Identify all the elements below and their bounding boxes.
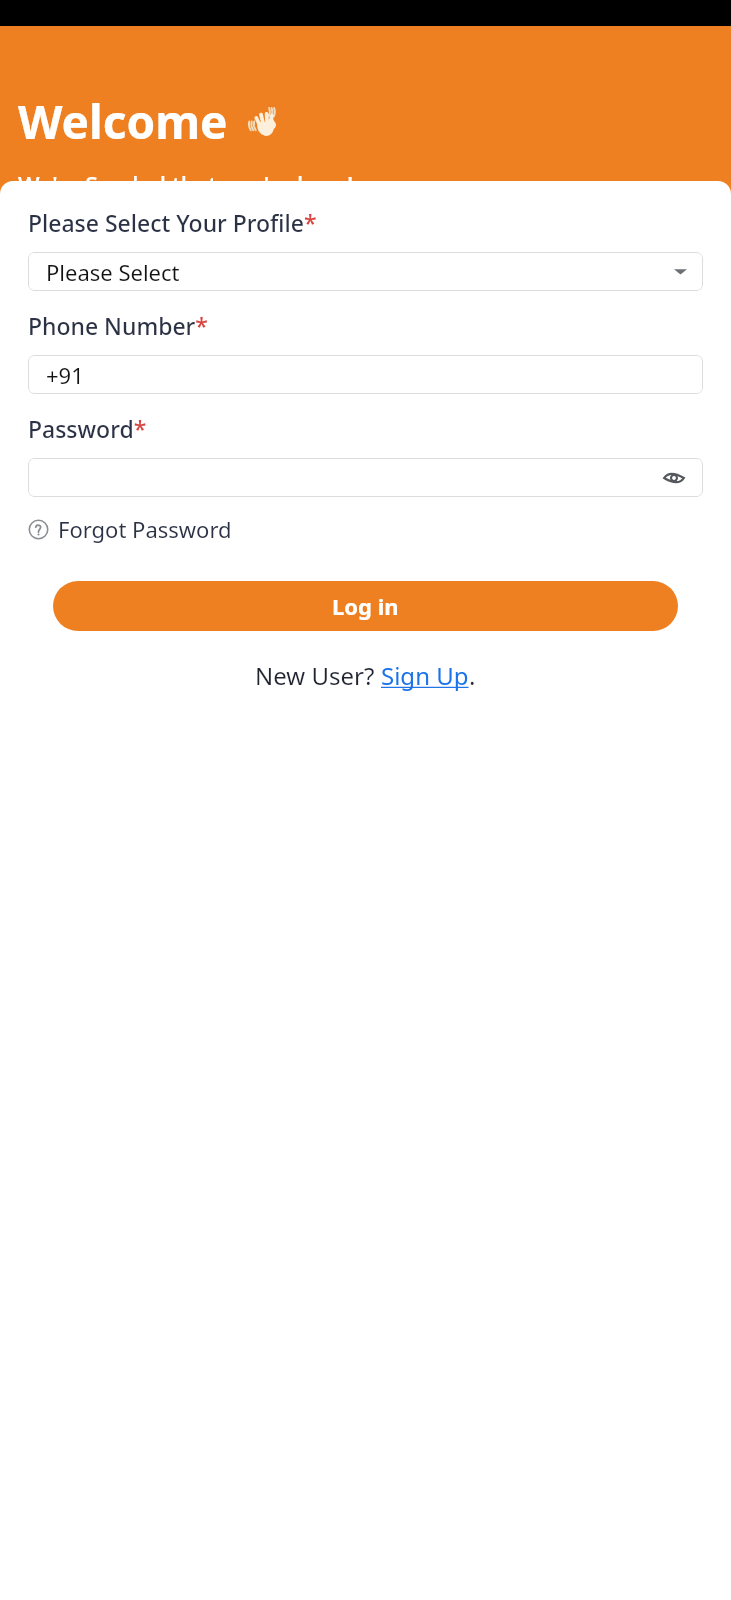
staticText: +91: [46, 360, 84, 390]
button[interactable]: Log in: [53, 581, 678, 631]
staticText: .: [469, 659, 476, 692]
staticText: Please Select: [46, 257, 180, 287]
staticText: Password*: [28, 413, 147, 444]
staticText: Log in: [332, 591, 399, 621]
staticText: Phone Number*: [28, 310, 208, 341]
button[interactable]: Show password: [28, 458, 703, 497]
button[interactable]: New User?: [255, 659, 476, 692]
button[interactable]: Forgot Password: [28, 514, 232, 544]
staticText: Forgot Password: [58, 514, 232, 544]
staticText: We're So glad that you're here!: [18, 169, 354, 181]
staticText: Sign Up: [381, 659, 469, 692]
staticText: Welcome: [18, 90, 228, 153]
staticText: New User?: [255, 659, 381, 692]
button[interactable]: +91: [28, 355, 703, 394]
button[interactable]: Please Select: [28, 252, 703, 291]
button[interactable]: Show password: [661, 465, 687, 491]
staticText: Please Select Your Profile*: [28, 207, 317, 238]
